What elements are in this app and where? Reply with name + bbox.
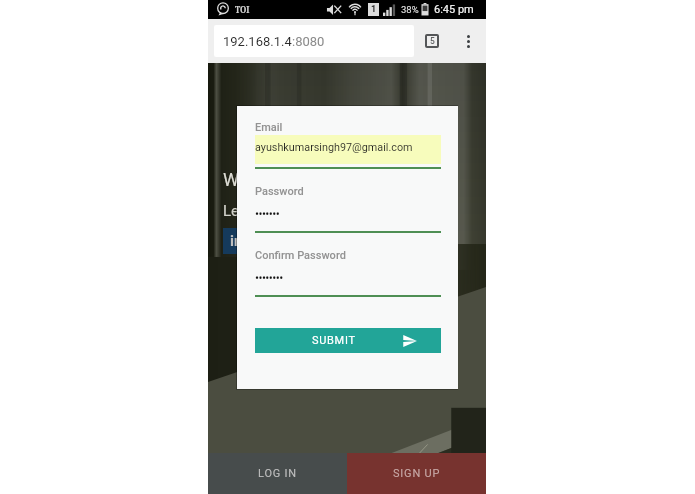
button[interactable]: LOG IN — [208, 453, 347, 494]
staticText: ayushkumarsingh97@gmail.com — [255, 141, 413, 154]
button[interactable]: Switch tabs, 5 open — [421, 30, 443, 52]
staticText: SIGN UP — [393, 467, 441, 480]
staticText: Confirm Password — [255, 249, 346, 262]
staticText: 6:45 pm — [434, 3, 474, 16]
button[interactable]: SUBMIT — [255, 328, 441, 353]
button[interactable]: SIGN UP — [347, 453, 486, 494]
button[interactable]: More options — [457, 30, 479, 52]
staticText: •••••••• — [255, 271, 283, 285]
button[interactable]: Sign in with LinkedIn — [223, 228, 249, 254]
staticText: in — [230, 232, 243, 250]
staticText: Welcome — [223, 169, 298, 190]
button[interactable]: 192.168.1.4 — [214, 25, 414, 57]
staticText: 192.168.1.4 — [223, 34, 292, 49]
staticText: Password — [255, 185, 304, 198]
staticText: Let's Login — [223, 202, 295, 220]
staticText: 1 — [371, 4, 377, 15]
staticText: TOI — [235, 4, 250, 15]
staticText: SUBMIT — [312, 334, 356, 347]
staticText: :8080 — [292, 34, 325, 49]
staticText: 5 — [430, 36, 435, 46]
staticText: LOG IN — [258, 467, 298, 480]
staticText: Email — [255, 121, 283, 134]
staticText: 38% — [401, 4, 419, 15]
staticText: ••••••• — [255, 207, 280, 221]
